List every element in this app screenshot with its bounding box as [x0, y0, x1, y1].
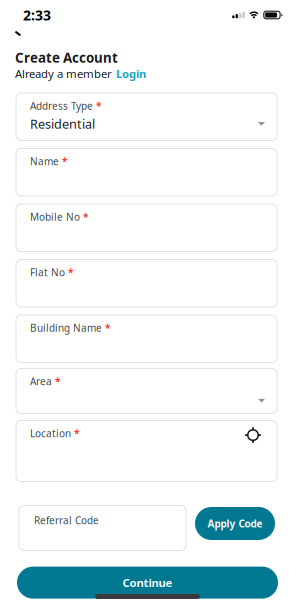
staticText: Mobile No [30, 210, 80, 223]
staticText: Create Account [15, 49, 118, 66]
staticText: * [62, 155, 67, 168]
staticText: Building Name [30, 321, 102, 334]
staticText: 2:33 [23, 6, 51, 24]
staticText: Address Type [30, 99, 93, 112]
staticText: Referral Code [34, 514, 99, 527]
staticText: * [68, 266, 73, 279]
button[interactable]: Continue [17, 567, 278, 599]
staticText: * [96, 99, 101, 112]
staticText: Apply Code [207, 517, 262, 530]
button[interactable]: Back [15, 31, 21, 36]
staticText: Area [30, 375, 52, 388]
button[interactable]: Use current location [245, 427, 266, 443]
staticText: Location [30, 427, 71, 440]
staticText: Name [30, 155, 59, 168]
staticText: Login [116, 66, 146, 81]
staticText: Already a member [15, 66, 112, 81]
staticText: * [105, 321, 110, 334]
staticText: Continue [122, 575, 172, 590]
button[interactable]: Apply Code [195, 507, 275, 540]
staticText: * [83, 210, 88, 223]
staticText: * [74, 427, 79, 440]
staticText: Flat No [30, 266, 65, 279]
button[interactable]: Login [116, 66, 146, 81]
staticText: * [55, 375, 60, 388]
staticText: Residential [30, 115, 95, 132]
